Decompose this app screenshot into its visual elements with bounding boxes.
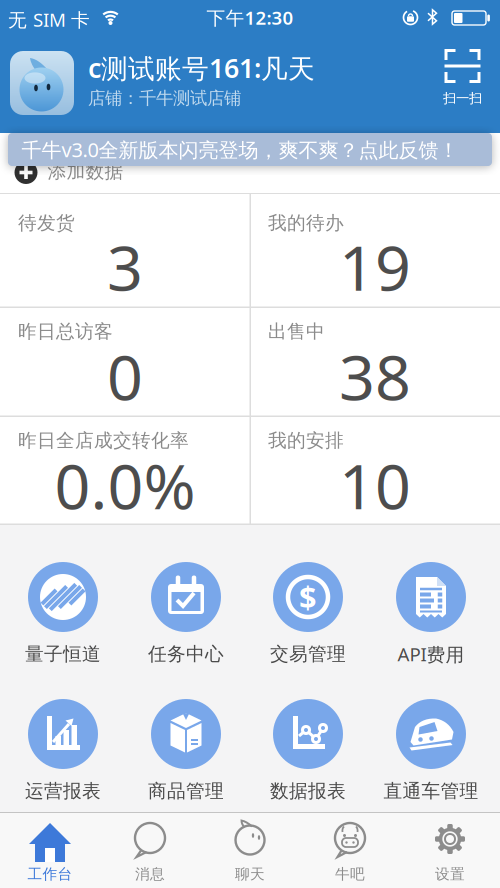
button[interactable]: 扫一扫: [443, 49, 482, 106]
staticText: 扫一扫: [443, 90, 482, 106]
staticText: 聊天: [235, 865, 265, 883]
button[interactable]: 消息: [100, 812, 200, 888]
staticText: 10: [339, 443, 411, 527]
staticText: 任务中心: [148, 642, 224, 665]
button[interactable]: 设置: [400, 812, 500, 888]
button[interactable]: 运营报表: [5, 699, 121, 803]
button[interactable]: c测试账号161:凡天: [10, 51, 315, 115]
button[interactable]: 直通车管理: [373, 699, 489, 803]
staticText: 0.0%: [54, 443, 195, 527]
button[interactable]: 商品管理: [128, 699, 244, 803]
staticText: 运营报表: [25, 779, 101, 802]
staticText: 我的待办: [268, 211, 344, 234]
staticText: $: [299, 576, 317, 617]
staticText: 交易管理: [270, 642, 346, 665]
staticText: 直通车管理: [383, 779, 478, 802]
staticText: 店铺：千牛测试店铺: [88, 88, 241, 109]
staticText: 待发货: [18, 211, 75, 234]
button[interactable]: 昨日全店成交转化率: [0, 416, 250, 525]
button[interactable]: 工作台: [0, 812, 100, 888]
staticText: 3: [107, 225, 143, 308]
staticText: 商品管理: [148, 779, 224, 802]
staticText: 工作台: [27, 865, 72, 883]
staticText: 添加数据: [47, 160, 123, 183]
staticText: 19: [339, 225, 411, 308]
button[interactable]: 昨日总访客: [0, 307, 250, 416]
button[interactable]: API费用: [373, 562, 489, 666]
staticText: 无 SIM 卡: [8, 7, 90, 32]
staticText: 千牛v3.0全新版本闪亮登场，爽不爽？点此反馈！: [21, 136, 458, 163]
button[interactable]: 千牛v3.0全新版本闪亮登场，爽不爽？点此反馈！: [8, 133, 492, 166]
staticText: 设置: [435, 865, 465, 883]
staticText: 我的安排: [268, 429, 344, 452]
button[interactable]: 牛吧: [300, 812, 400, 888]
button[interactable]: 聊天: [200, 812, 300, 888]
staticText: 出售中: [268, 320, 325, 343]
staticText: c测试账号161:凡天: [88, 50, 315, 86]
button[interactable]: 待发货: [0, 194, 250, 307]
button[interactable]: $: [250, 562, 366, 666]
button[interactable]: 量子恒道: [5, 562, 121, 666]
staticText: 昨日全店成交转化率: [18, 429, 189, 452]
staticText: 量子恒道: [25, 642, 101, 665]
staticText: 消息: [135, 865, 165, 883]
button[interactable]: 我的安排: [250, 416, 500, 525]
button[interactable]: 我的待办: [250, 194, 500, 307]
staticText: 牛吧: [335, 865, 365, 883]
button[interactable]: 任务中心: [128, 562, 244, 666]
button[interactable]: 数据报表: [250, 699, 366, 803]
staticText: 昨日总访客: [18, 320, 113, 343]
staticText: 38: [339, 334, 411, 418]
staticText: 数据报表: [270, 779, 346, 802]
staticText: API费用: [397, 642, 464, 666]
staticText: 下午12:30: [206, 5, 293, 30]
staticText: 0: [107, 334, 143, 418]
button[interactable]: 出售中: [250, 307, 500, 416]
button[interactable]: 添加数据: [0, 133, 500, 194]
